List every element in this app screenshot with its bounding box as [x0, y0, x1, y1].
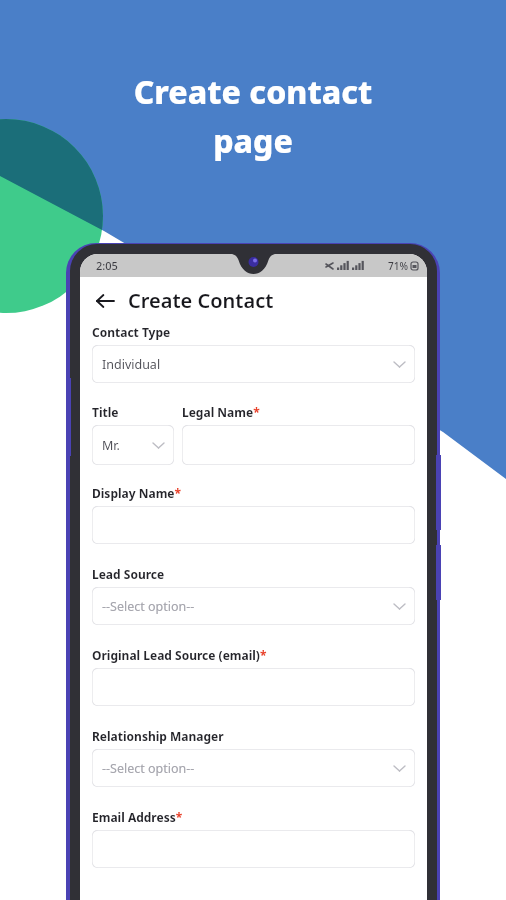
button[interactable]: [92, 668, 415, 706]
staticText: Title: [92, 404, 119, 420]
staticText: Create Contact: [128, 287, 274, 314]
staticText: Mr.: [102, 437, 120, 454]
button[interactable]: Mr.: [92, 425, 174, 465]
staticText: Display Name*: [92, 485, 182, 501]
staticText: Legal Name*: [182, 404, 260, 420]
staticText: Create contact page: [0, 70, 506, 163]
button[interactable]: [92, 830, 415, 868]
button[interactable]: [182, 425, 415, 465]
button[interactable]: --Select option--: [92, 587, 415, 625]
staticText: 71%: [388, 259, 408, 273]
staticText: Email Address*: [92, 809, 183, 825]
staticText: Individual: [102, 356, 161, 373]
button[interactable]: Back: [88, 284, 122, 318]
staticText: --Select option--: [102, 760, 195, 777]
staticText: Original Lead Source (email)*: [92, 647, 267, 663]
staticText: 2:05: [96, 258, 118, 273]
button[interactable]: Individual: [92, 345, 415, 383]
staticText: Relationship Manager: [92, 728, 224, 744]
staticText: Contact Type: [92, 324, 171, 340]
staticText: --Select option--: [102, 598, 195, 615]
staticText: Lead Source: [92, 566, 165, 582]
button[interactable]: --Select option--: [92, 749, 415, 787]
button[interactable]: [92, 506, 415, 544]
